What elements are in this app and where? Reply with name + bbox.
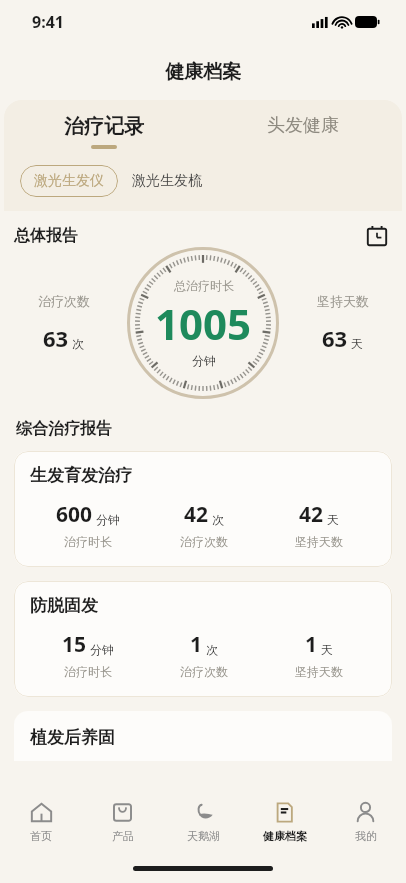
staticText: 1 bbox=[305, 630, 318, 659]
staticText: 9:41 bbox=[32, 11, 64, 33]
staticText: 治疗记录 bbox=[64, 114, 144, 139]
staticText: 分钟 bbox=[90, 642, 114, 657]
staticText: 天 bbox=[321, 642, 333, 657]
button[interactable]: 植发后养固 bbox=[14, 711, 392, 761]
staticText: 次 bbox=[212, 512, 224, 527]
staticText: 头发健康 bbox=[267, 114, 339, 137]
button[interactable]: 健康档案 bbox=[244, 791, 325, 853]
staticText: 42 bbox=[299, 500, 324, 529]
staticText: 600 bbox=[56, 500, 93, 529]
staticText: 63 bbox=[43, 323, 69, 353]
staticText: 15 bbox=[62, 630, 87, 659]
button[interactable]: 天鹅湖 bbox=[163, 791, 244, 853]
staticText: 激光生发仪 bbox=[34, 172, 104, 190]
staticText: 坚持天数 bbox=[295, 534, 343, 549]
staticText: 生发育发治疗 bbox=[30, 465, 132, 486]
button[interactable]: 头发健康 bbox=[203, 114, 402, 147]
staticText: 1005 bbox=[155, 295, 252, 352]
staticText: 我的 bbox=[355, 829, 377, 843]
button[interactable]: 激光生发梳 bbox=[118, 165, 216, 197]
staticText: 治疗时长 bbox=[64, 534, 112, 549]
staticText: 首页 bbox=[30, 829, 52, 843]
staticText: 总治疗时长 bbox=[174, 278, 234, 293]
button[interactable]: 生发育发治疗 bbox=[14, 451, 392, 567]
staticText: 治疗次数 bbox=[38, 293, 90, 309]
staticText: 天鹅湖 bbox=[187, 829, 220, 843]
staticText: 健康档案 bbox=[165, 60, 241, 84]
staticText: 防脱固发 bbox=[30, 595, 98, 616]
staticText: 治疗时长 bbox=[64, 664, 112, 679]
button[interactable]: 激光生发仪 bbox=[20, 165, 118, 197]
staticText: 42 bbox=[184, 500, 209, 529]
staticText: 健康档案 bbox=[263, 829, 307, 843]
staticText: 次 bbox=[206, 642, 218, 657]
staticText: 次 bbox=[72, 336, 84, 351]
button[interactable]: 防脱固发 bbox=[14, 581, 392, 697]
staticText: 综合治疗报告 bbox=[16, 419, 112, 439]
staticText: 植发后养固 bbox=[30, 727, 115, 748]
staticText: 63 bbox=[322, 323, 348, 353]
staticText: 激光生发梳 bbox=[132, 172, 202, 190]
button[interactable]: 首页 bbox=[0, 791, 82, 853]
button[interactable]: Calendar bbox=[362, 221, 392, 251]
button[interactable]: 产品 bbox=[82, 791, 163, 853]
button[interactable]: 治疗记录 bbox=[4, 114, 203, 149]
staticText: 坚持天数 bbox=[317, 293, 369, 309]
staticText: 治疗次数 bbox=[180, 664, 228, 679]
staticText: 分钟 bbox=[192, 353, 216, 368]
staticText: 坚持天数 bbox=[295, 664, 343, 679]
staticText: 1 bbox=[190, 630, 203, 659]
staticText: 治疗次数 bbox=[180, 534, 228, 549]
staticText: 产品 bbox=[112, 829, 134, 843]
staticText: 总体报告 bbox=[14, 226, 78, 246]
staticText: 天 bbox=[327, 512, 339, 527]
button[interactable]: 我的 bbox=[325, 791, 406, 853]
staticText: 天 bbox=[351, 336, 363, 351]
staticText: 分钟 bbox=[96, 512, 120, 527]
